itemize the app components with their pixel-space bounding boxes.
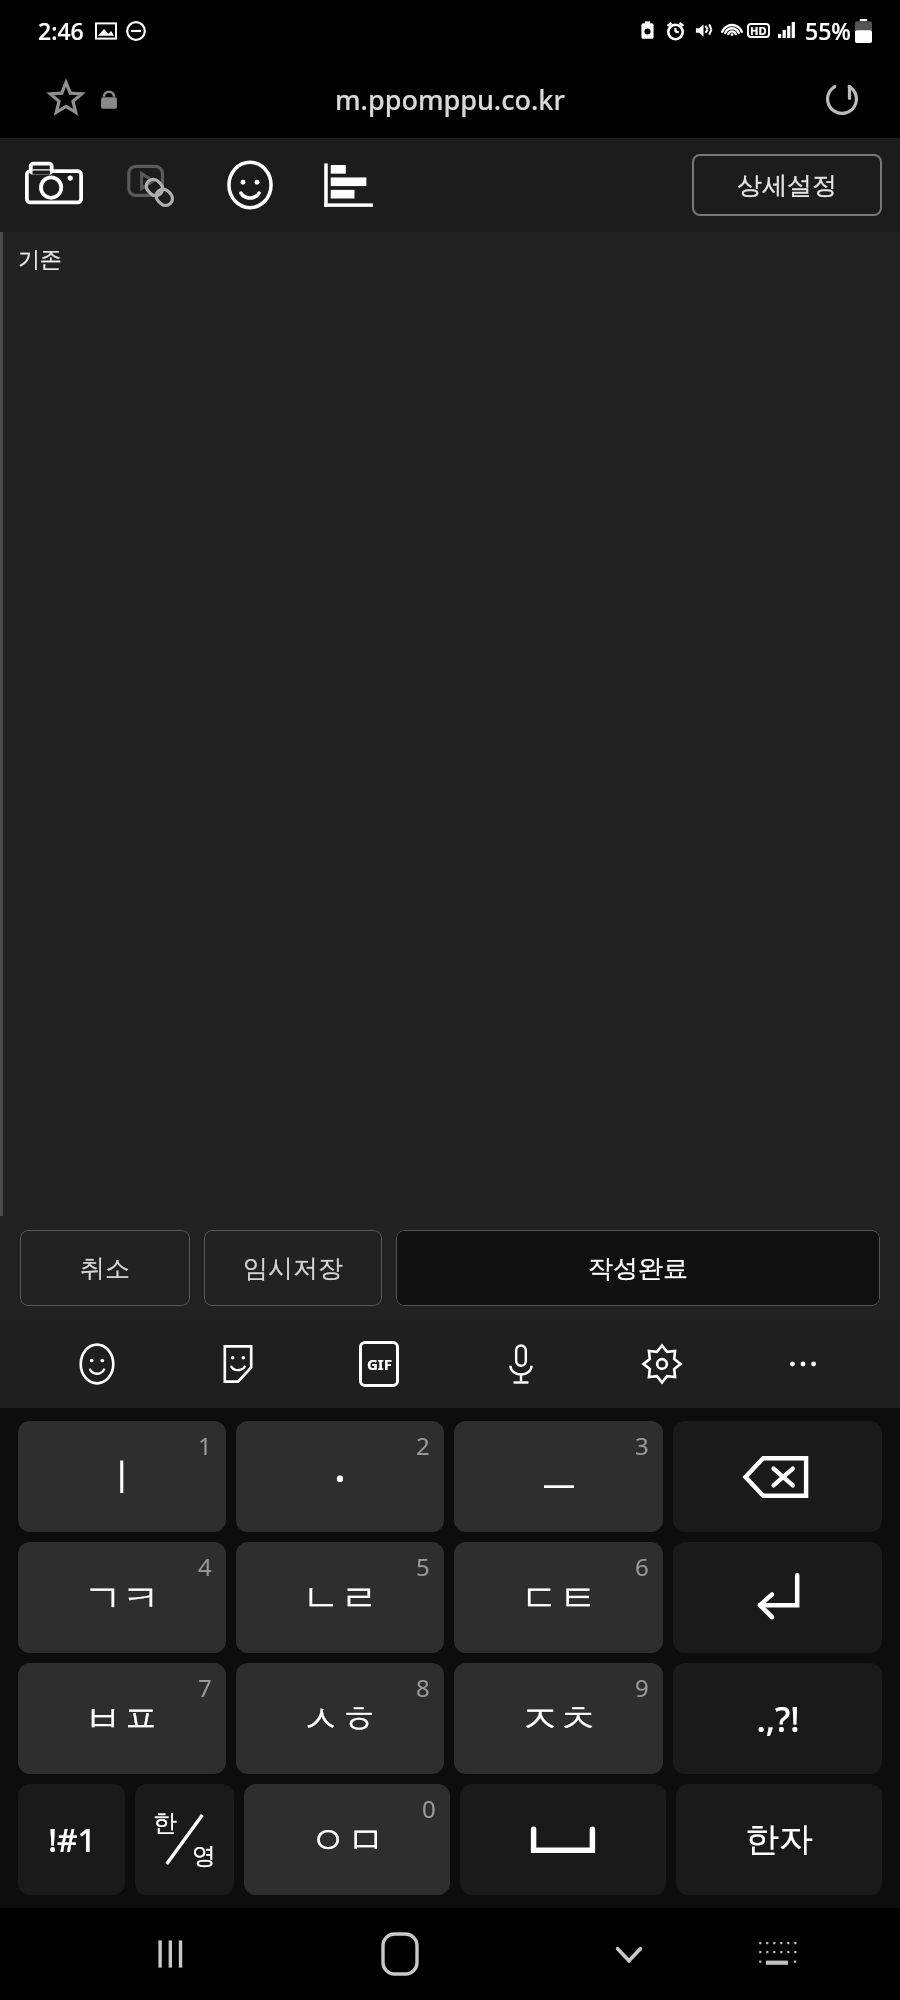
staticText: 0 xyxy=(422,1792,436,1825)
staticText: 1 xyxy=(198,1429,212,1462)
button[interactable]: Add poll xyxy=(312,149,384,221)
staticText: 4 xyxy=(198,1550,212,1583)
button[interactable]: Add video link xyxy=(116,149,188,221)
button[interactable]: 취소 xyxy=(20,1230,190,1306)
button[interactable]: Sticker xyxy=(194,1320,282,1408)
button[interactable]: GIF xyxy=(335,1320,423,1408)
staticText: 9 xyxy=(635,1671,649,1704)
staticText: ㄷㅌ xyxy=(521,1574,597,1622)
button[interactable]: ㄴㄹ xyxy=(236,1542,444,1653)
staticText: ㅅㅎ xyxy=(302,1695,378,1743)
staticText: · xyxy=(334,1447,346,1507)
staticText: ㅂㅍ xyxy=(84,1695,160,1743)
button[interactable]: ㄷㅌ xyxy=(454,1542,663,1653)
staticText: 한자 xyxy=(745,1818,813,1861)
staticText: 영 xyxy=(192,1841,216,1871)
staticText: 6 xyxy=(635,1550,649,1583)
button[interactable]: .,?! xyxy=(673,1663,882,1774)
button[interactable]: · xyxy=(236,1421,444,1532)
staticText: 3 xyxy=(635,1429,649,1462)
staticText: 한 xyxy=(153,1808,177,1838)
staticText: 2 xyxy=(416,1429,430,1462)
staticText: ㅣ xyxy=(103,1453,141,1501)
staticText: .,?! xyxy=(756,1696,800,1742)
button[interactable]: Emoji xyxy=(53,1320,141,1408)
staticText: 7 xyxy=(198,1671,212,1704)
button[interactable]: Keyboard settings xyxy=(618,1320,706,1408)
button[interactable]: ㅅㅎ xyxy=(236,1663,444,1774)
button[interactable]: Space xyxy=(460,1784,666,1895)
staticText: 임시저장 xyxy=(243,1253,343,1284)
button[interactable]: Home xyxy=(358,1912,442,1996)
staticText: HD xyxy=(750,23,767,38)
button[interactable]: Voice input xyxy=(477,1320,565,1408)
staticText: 상세설정 xyxy=(737,170,837,201)
staticText: GIF xyxy=(367,1354,392,1374)
staticText: 2:46 xyxy=(38,15,84,46)
button[interactable]: Enter xyxy=(673,1542,882,1653)
staticText: 기존 xyxy=(18,246,62,274)
button[interactable]: Bookmark xyxy=(42,75,90,123)
button[interactable]: 상세설정 xyxy=(692,154,882,216)
staticText: 5 xyxy=(416,1550,430,1583)
button[interactable]: 작성완료 xyxy=(396,1230,880,1306)
button[interactable]: ㅣ xyxy=(18,1421,226,1532)
staticText: 55% xyxy=(805,15,851,46)
button[interactable]: Switch keyboard xyxy=(736,1912,820,1996)
staticText: 작성완료 xyxy=(588,1253,688,1284)
button[interactable]: More options xyxy=(759,1320,847,1408)
staticText: 8 xyxy=(416,1671,430,1704)
staticText: 취소 xyxy=(80,1253,130,1284)
staticText: ㅈㅊ xyxy=(521,1695,597,1743)
button[interactable]: ㅡ xyxy=(454,1421,663,1532)
button[interactable]: ㄱㅋ xyxy=(18,1542,226,1653)
button[interactable]: Backspace xyxy=(673,1421,882,1532)
button[interactable]: ㅈㅊ xyxy=(454,1663,663,1774)
button[interactable]: Reload xyxy=(814,71,870,127)
staticText: ㄴㄹ xyxy=(302,1574,378,1622)
staticText: !#1 xyxy=(48,1818,96,1862)
staticText: ㅡ xyxy=(540,1453,578,1501)
button[interactable]: Korean English toggle xyxy=(135,1784,234,1895)
button[interactable]: Add emoticon xyxy=(214,149,286,221)
button[interactable]: Hide keyboard xyxy=(587,1912,671,1996)
staticText: m.ppomppu.co.kr xyxy=(335,81,565,118)
staticText: ㅇㅁ xyxy=(309,1816,385,1864)
button[interactable]: Recent apps xyxy=(129,1912,213,1996)
button[interactable]: ㅇㅁ xyxy=(244,1784,450,1895)
button[interactable]: !#1 xyxy=(18,1784,125,1895)
button[interactable]: 한자 xyxy=(676,1784,882,1895)
button[interactable]: Add photo xyxy=(18,149,90,221)
staticText: ㄱㅋ xyxy=(84,1574,160,1622)
button[interactable]: 임시저장 xyxy=(204,1230,382,1306)
button[interactable]: ㅂㅍ xyxy=(18,1663,226,1774)
